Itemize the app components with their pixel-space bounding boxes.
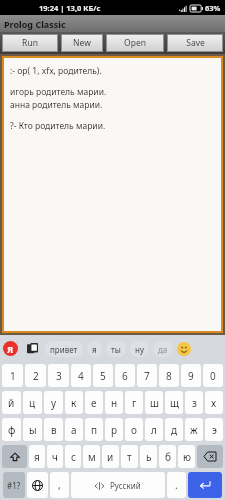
staticText: а [71,423,77,437]
staticText: 0 [210,369,216,383]
staticText: м [88,450,96,464]
staticText: 9 [188,369,194,383]
button[interactable]: з [185,391,203,414]
staticText: ю [183,450,191,464]
staticText: 19:24 | 13,0 КБ/c [39,3,101,13]
staticText: 5 [100,369,106,383]
button[interactable]: д [165,418,183,441]
button[interactable]: ц [23,391,42,414]
staticText: т [127,450,132,464]
button[interactable]: е [85,391,103,414]
staticText: Run [22,37,38,49]
button[interactable]: л [145,418,163,441]
button[interactable]: ну [135,341,144,357]
button[interactable]: Shift [2,445,27,468]
button[interactable]: т [121,445,138,468]
staticText: щ [170,396,179,410]
button[interactable]: 2 [25,364,46,387]
staticText: э [212,423,217,437]
button[interactable]: Yandex [3,341,18,356]
staticText: 63% [205,3,221,13]
staticText: д [171,423,178,437]
button[interactable]: о [125,418,143,441]
button[interactable]: Backspace [197,445,223,468]
button[interactable]: Change language [27,472,48,498]
button[interactable]: м [83,445,100,468]
button[interactable]: а [65,418,83,441]
staticText: 4 [78,369,84,383]
button[interactable]: 4 [71,364,91,387]
button[interactable]: :- op( 1, xfx, родитель). [4,58,221,331]
button[interactable]: с [65,445,81,468]
button[interactable]: Enter [188,472,222,498]
button[interactable]: #1? [3,472,25,498]
button[interactable]: 3 [48,364,69,387]
button[interactable]: привет [50,341,78,357]
button[interactable]: и [102,445,119,468]
button[interactable]: Space [71,472,165,498]
button[interactable]: . [167,472,186,498]
button[interactable]: я [29,445,45,468]
button[interactable]: ж [185,418,203,441]
staticText: ш [150,396,159,410]
button[interactable]: ы [23,418,42,441]
button[interactable]: н [105,391,123,414]
staticText: о [131,423,137,437]
staticText: Open [124,37,146,49]
staticText: анна родитель марии. [10,99,103,111]
staticText: и [107,450,114,464]
staticText: привет [50,344,78,355]
button[interactable]: й [2,391,21,414]
staticText: г [132,396,137,410]
staticText: да [158,344,168,355]
button[interactable]: ь [140,445,157,468]
button[interactable]: ч [47,445,63,468]
button[interactable]: Save [167,34,223,52]
staticText: ну [135,344,144,355]
button[interactable]: , [50,472,69,498]
button[interactable]: ю [178,445,195,468]
staticText: ?- Кто родитель марии. [10,120,106,132]
staticText: з [192,396,197,410]
button[interactable]: я [92,341,97,357]
button[interactable]: у [44,391,63,414]
staticText: 8 [166,369,172,383]
staticText: ц [29,396,36,410]
button[interactable]: 5 [93,364,113,387]
staticText: в [51,423,57,437]
button[interactable]: ф [2,418,21,441]
button[interactable]: 7 [137,364,157,387]
button[interactable]: х [205,391,223,414]
button[interactable]: в [44,418,63,441]
button[interactable]: 8 [159,364,179,387]
staticText: б [165,450,171,464]
staticText: ж [190,423,198,437]
button[interactable]: п [85,418,103,441]
button[interactable]: б [159,445,176,468]
staticText: Я [7,343,14,355]
button[interactable]: 6 [115,364,135,387]
button[interactable]: щ [165,391,183,414]
button[interactable]: ш [145,391,163,414]
button[interactable]: э [205,418,223,441]
staticText: у [51,396,57,410]
button[interactable]: ты [111,341,121,357]
staticText: п [91,423,98,437]
button[interactable]: к [65,391,83,414]
button[interactable]: Emoji [177,342,191,356]
staticText: я [34,450,40,464]
button[interactable]: 9 [181,364,201,387]
staticText: Prolog Classic [4,18,66,30]
staticText: Save [186,37,205,49]
button[interactable]: г [125,391,143,414]
button[interactable]: 1 [2,364,23,387]
button[interactable]: Open [106,34,164,52]
button[interactable]: р [105,418,123,441]
button[interactable]: 0 [203,364,223,387]
button[interactable]: Clipboard [25,341,40,356]
button[interactable]: New [61,34,103,52]
staticText: й [8,396,15,410]
button[interactable]: да [158,341,168,357]
staticText: с [71,450,76,464]
button[interactable]: Run [2,34,58,52]
